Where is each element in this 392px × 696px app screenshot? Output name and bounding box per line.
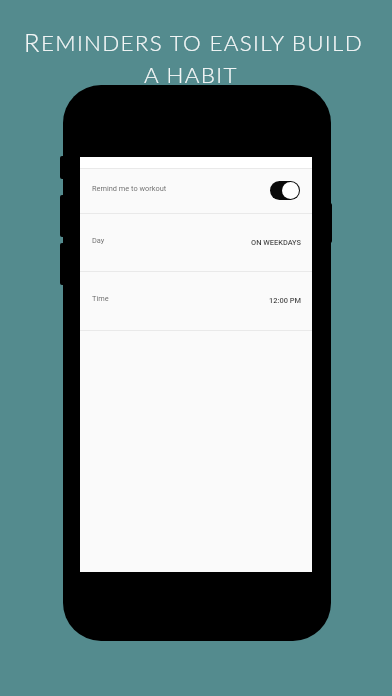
button[interactable]: Remind me to workout [80,168,312,213]
staticText: Time [92,294,109,303]
button[interactable]: Day [80,213,312,271]
staticText: ON WEEKDAYS [251,238,302,247]
staticText: A HABIT [144,61,238,88]
staticText: Remind me to workout [92,184,167,193]
staticText: 12:00 PM [269,296,302,305]
staticText: R [24,27,41,57]
other: Reminder toggle [270,181,300,200]
staticText: Day [92,236,105,245]
staticText: EMINDERS TO EASILY BUILD [41,29,363,56]
button[interactable]: Time [80,271,312,330]
